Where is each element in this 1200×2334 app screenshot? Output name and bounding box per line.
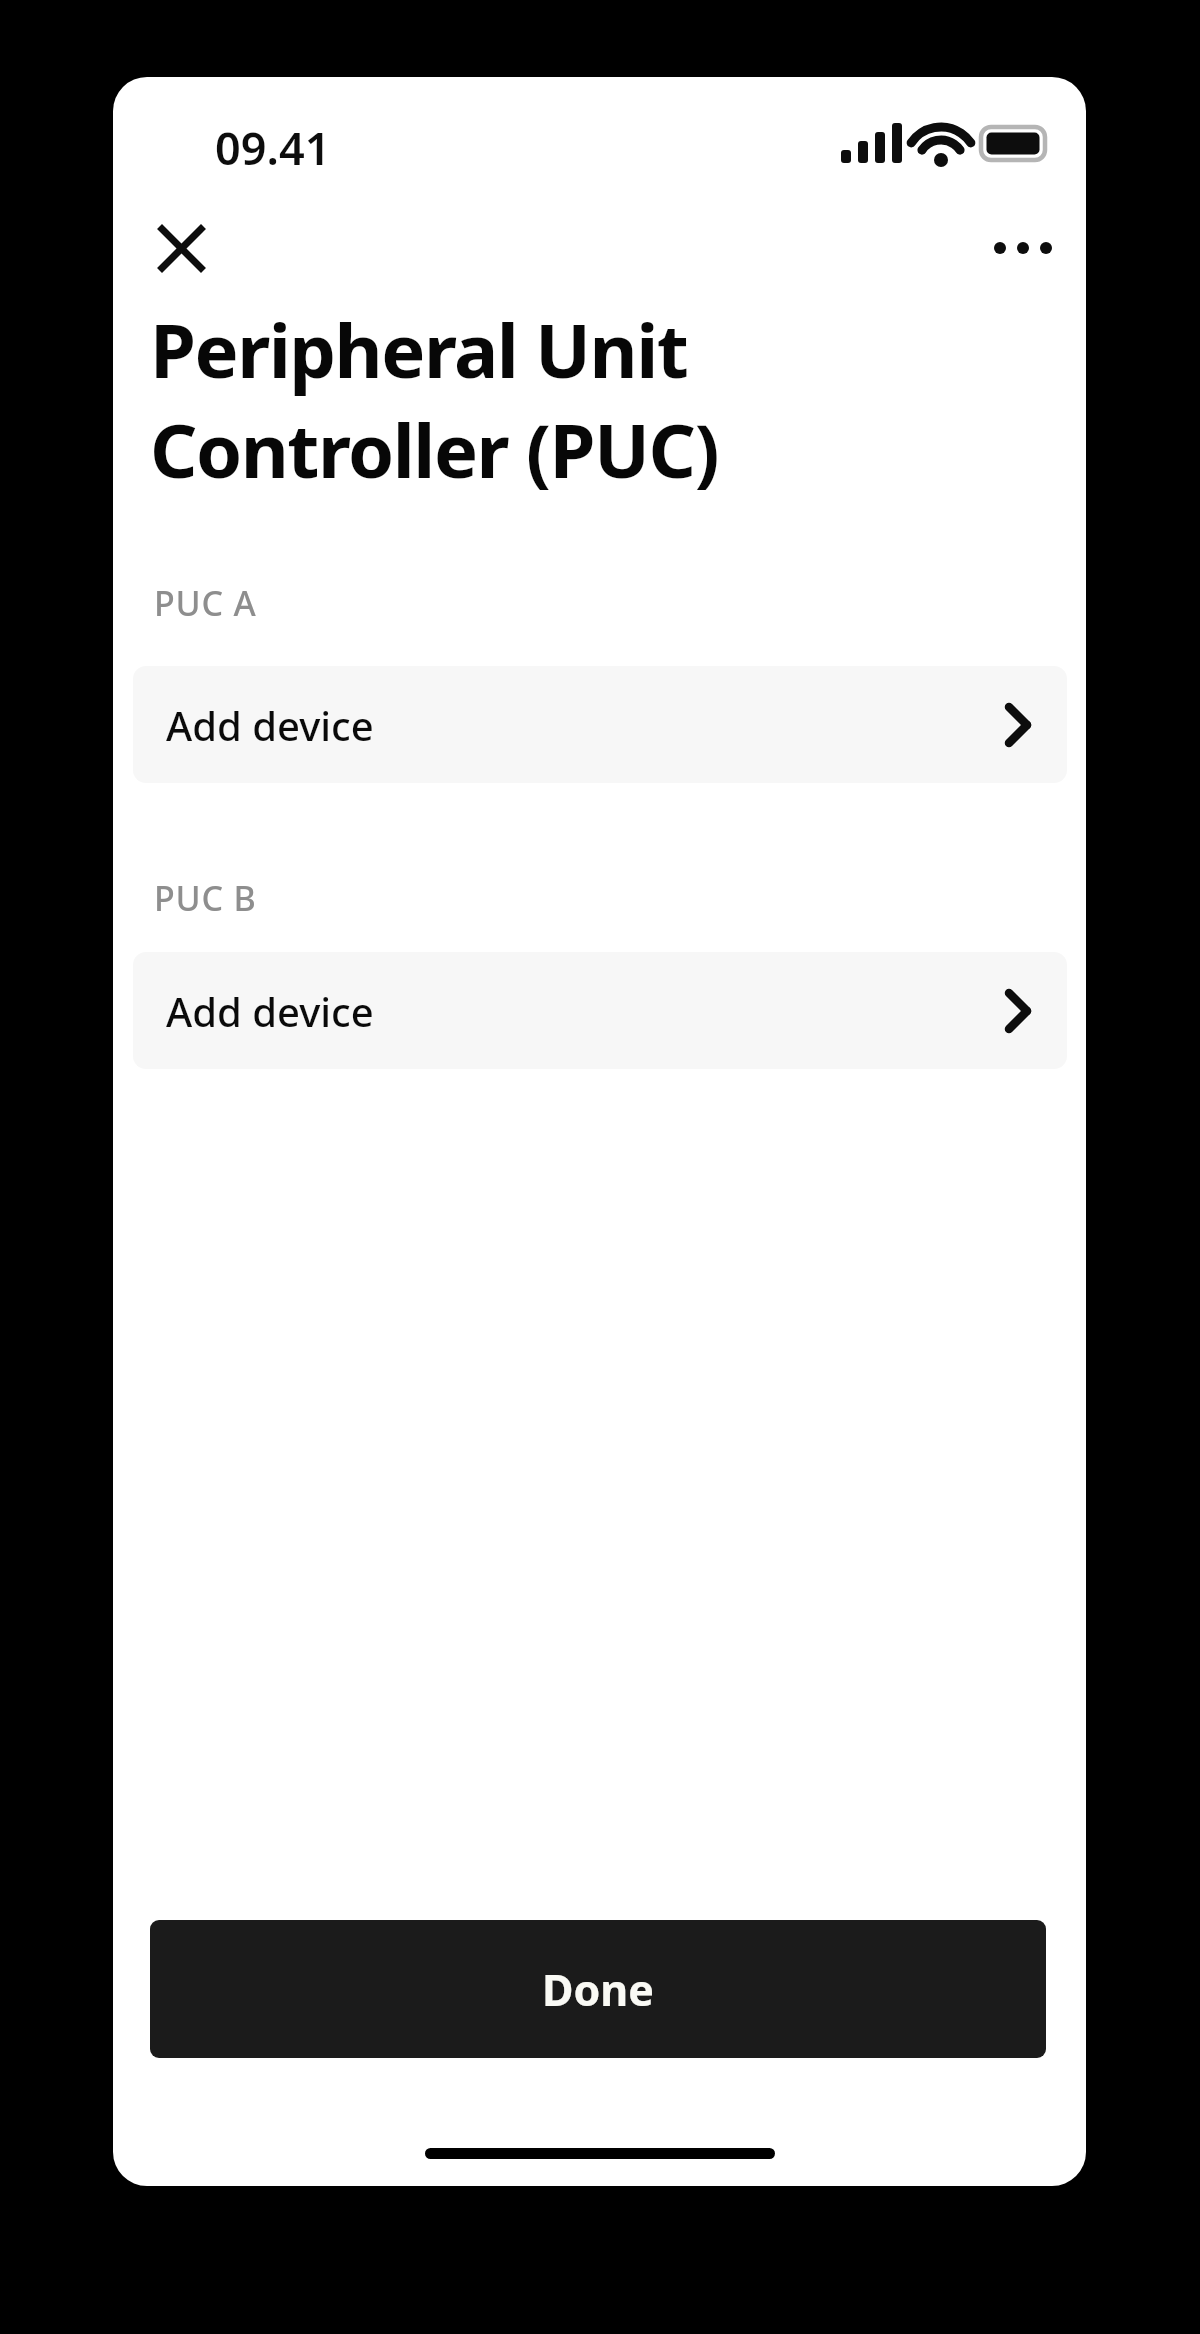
staticText: PUC B <box>154 875 257 921</box>
staticText: Add device <box>166 984 1005 1038</box>
button[interactable]: More options <box>969 194 1077 302</box>
button[interactable]: Close <box>127 194 235 302</box>
button[interactable]: Add device <box>133 666 1067 783</box>
button[interactable]: Add device <box>133 952 1067 1069</box>
staticText: Add device <box>166 698 1005 752</box>
staticText: PUC A <box>154 580 257 626</box>
staticText: Peripheral Unit Controller (PUC) <box>150 299 718 500</box>
staticText: Done <box>542 1960 654 2019</box>
button[interactable]: Done <box>150 1920 1046 2058</box>
staticText: 09.41 <box>215 117 331 178</box>
